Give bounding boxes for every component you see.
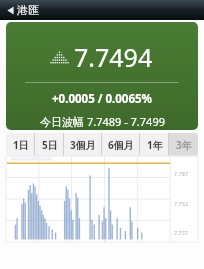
button[interactable]: 3個月 (64, 133, 102, 156)
staticText: 1年 (147, 138, 163, 152)
button[interactable]: 1日 (6, 133, 35, 156)
staticText: 3個月 (70, 138, 96, 152)
other: Back (7, 6, 14, 15)
button[interactable]: 6個月 (102, 133, 140, 156)
staticText: 5日 (42, 138, 58, 152)
staticText: 1日 (13, 138, 29, 152)
staticText: 今日波幅 7.7489 - 7.7499 (40, 114, 165, 129)
staticText: +0.0005 / 0.0065% (52, 91, 152, 107)
button[interactable]: 3年 (169, 133, 198, 156)
staticText: 7.787 (174, 170, 189, 177)
button[interactable]: 5日 (35, 133, 64, 156)
button[interactable]: Back (5, 2, 41, 18)
staticText: 6個月 (108, 138, 134, 152)
staticText: 7.762 (174, 200, 189, 207)
button[interactable]: Up (6, 22, 198, 130)
button[interactable]: 1年 (140, 133, 169, 156)
staticText: 港匯 (17, 3, 39, 17)
staticText: 3年 (176, 138, 192, 152)
staticText: 7.7494 (74, 40, 153, 74)
other: Up (52, 51, 67, 64)
staticText: 7.737 (174, 229, 189, 236)
